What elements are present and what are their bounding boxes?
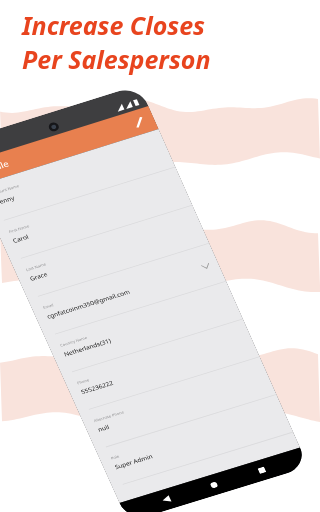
staticText: Last Name	[25, 262, 47, 272]
staticText: Grace	[28, 270, 48, 283]
button[interactable]: First Name	[0, 167, 193, 262]
button[interactable]: Edit profile	[127, 112, 150, 132]
button[interactable]: Back	[138, 483, 194, 512]
staticText: Phone	[76, 377, 90, 386]
staticText: Alternate Phone	[93, 410, 125, 423]
staticText: Profile	[0, 158, 11, 177]
staticText: Role	[110, 454, 120, 461]
staticText: Country Name	[59, 335, 88, 348]
staticText: First Name	[8, 223, 30, 234]
button[interactable]: Home	[186, 468, 242, 502]
button[interactable]: Country Name	[45, 281, 243, 375]
button[interactable]: Last Name	[11, 205, 209, 300]
staticText: Email	[42, 302, 54, 310]
button[interactable]: Alternate Phone	[79, 357, 277, 451]
staticText: null	[96, 423, 111, 433]
button[interactable]: Recent apps	[234, 453, 290, 487]
staticText: cgnfatcoinm350@gmail.com	[46, 288, 131, 320]
staticText: Penny	[0, 194, 16, 207]
button[interactable]: Phone	[62, 319, 260, 413]
staticText: Account Name	[0, 183, 20, 196]
staticText: Netherlands(31)	[63, 337, 112, 358]
staticText: Super Admin	[113, 452, 154, 471]
staticText: Per Salesperson	[22, 42, 211, 76]
staticText: Carol	[11, 233, 30, 245]
button[interactable]: Email	[28, 243, 226, 338]
button[interactable]: Account Name	[0, 129, 176, 224]
staticText: 555236222	[79, 379, 114, 396]
button[interactable]: Role	[96, 395, 293, 488]
staticText: Increase Closes	[22, 8, 205, 42]
